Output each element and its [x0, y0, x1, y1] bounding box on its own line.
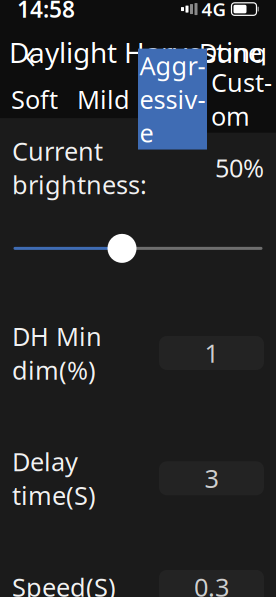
staticText: ‹: [24, 22, 36, 82]
staticText: 0.3: [194, 570, 229, 597]
staticText: Custom: [211, 65, 272, 133]
button[interactable]: Brightness slider handle: [107, 234, 136, 263]
button[interactable]: 1: [159, 336, 264, 370]
staticText: Speed(S): [12, 570, 116, 597]
staticText: DH Min dim(%): [12, 319, 102, 387]
button[interactable]: 3: [159, 461, 264, 495]
staticText: 3: [204, 461, 218, 495]
staticText: 14:58: [17, 0, 75, 24]
button[interactable]: 0.3: [159, 570, 264, 597]
button[interactable]: Soft: [0, 80, 69, 118]
staticText: Current brightness:: [12, 134, 147, 201]
staticText: Daylight Harvesting: [9, 33, 267, 71]
button[interactable]: Aggressive: [138, 80, 207, 118]
staticText: Soft: [11, 82, 58, 116]
staticText: 4G: [201, 0, 226, 21]
button[interactable]: Mild: [69, 80, 138, 118]
staticText: 1: [204, 336, 218, 370]
staticText: Done: [199, 35, 262, 69]
staticText: Aggressive: [139, 49, 205, 149]
staticText: Delay time(S): [12, 445, 96, 512]
button[interactable]: Done: [193, 30, 268, 74]
staticText: Mild: [77, 82, 130, 116]
staticText: 50%: [215, 151, 264, 184]
button[interactable]: Custom: [207, 80, 276, 118]
button[interactable]: Back: [8, 30, 52, 74]
